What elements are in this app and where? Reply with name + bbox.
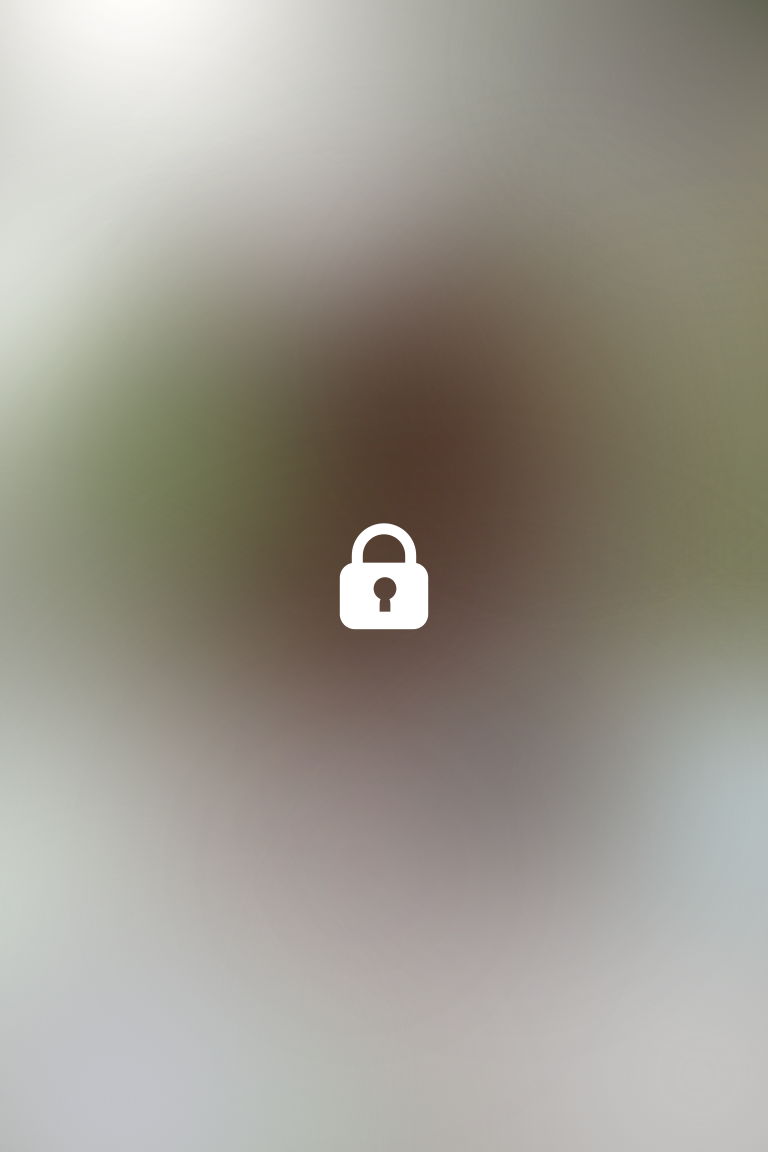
button[interactable]: Unlock (336, 520, 432, 632)
